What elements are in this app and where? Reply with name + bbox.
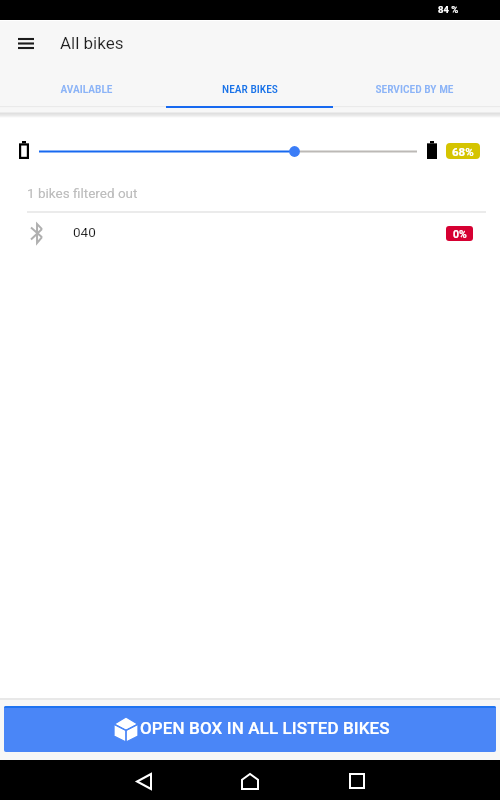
button[interactable]: OPEN BOX IN ALL LISTED BIKES [4,706,496,752]
staticText: 84 % [438,4,459,15]
staticText: 1 bikes filtered out [27,185,138,201]
staticText: All bikes [60,33,124,53]
staticText: 0% [453,228,467,240]
button[interactable]: 040 [0,213,500,253]
button[interactable]: Home [226,760,274,800]
button[interactable]: Back [119,760,167,800]
staticText: 040 [73,224,96,240]
button[interactable]: Open navigation menu [6,23,46,63]
staticText: SERVICED BY ME [375,82,454,95]
staticText: NEAR BIKES [222,82,278,95]
staticText: OPEN BOX IN ALL LISTED BIKES [140,718,390,738]
button[interactable]: AVAILABLE [0,71,166,105]
button[interactable]: SERVICED BY ME [333,71,500,105]
button[interactable]: Recent apps [333,760,381,800]
staticText: 68% [452,145,474,158]
staticText: AVAILABLE [60,82,113,95]
button[interactable]: NEAR BIKES [166,71,333,105]
